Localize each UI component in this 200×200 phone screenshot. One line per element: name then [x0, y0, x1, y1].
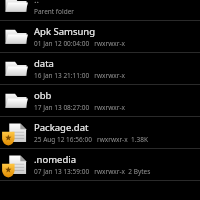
button[interactable]: Folder — [0, 21, 200, 53]
other: File — [4, 121, 28, 145]
staticText: 01 Jan 12 00:04:00 rwxrwxr-x — [34, 39, 125, 48]
staticText: .nomedia — [34, 153, 77, 166]
staticText: Parent folder — [34, 7, 75, 16]
staticText: Package.dat — [34, 121, 89, 134]
other: Folder — [4, 89, 28, 113]
button[interactable]: Folder — [0, 53, 200, 85]
button[interactable]: File — [0, 117, 200, 149]
other: File — [4, 153, 28, 177]
staticText: 16 Jan 13 21:11:00 rwxrwxr-x — [34, 71, 125, 80]
button[interactable]: File — [0, 149, 200, 181]
staticText: data — [34, 57, 54, 70]
staticText: 17 Jan 13 08:27:00 rwxrwxr-x — [34, 103, 125, 112]
other: Folder — [4, 0, 28, 17]
other: Folder — [4, 25, 28, 49]
staticText: obb — [34, 89, 52, 102]
button[interactable]: Folder — [0, 0, 200, 21]
staticText: .. — [34, 0, 40, 6]
staticText: Apk Samsung — [34, 25, 96, 38]
staticText: 25 Aug 12 16:56:00 rwxrwxr-x 1.38K — [34, 135, 148, 144]
other: Folder — [4, 57, 28, 81]
staticText: 07 Jan 13 13:59:00 rwxrwxr-x 2 Bytes — [34, 167, 151, 176]
button[interactable]: Folder — [0, 85, 200, 117]
